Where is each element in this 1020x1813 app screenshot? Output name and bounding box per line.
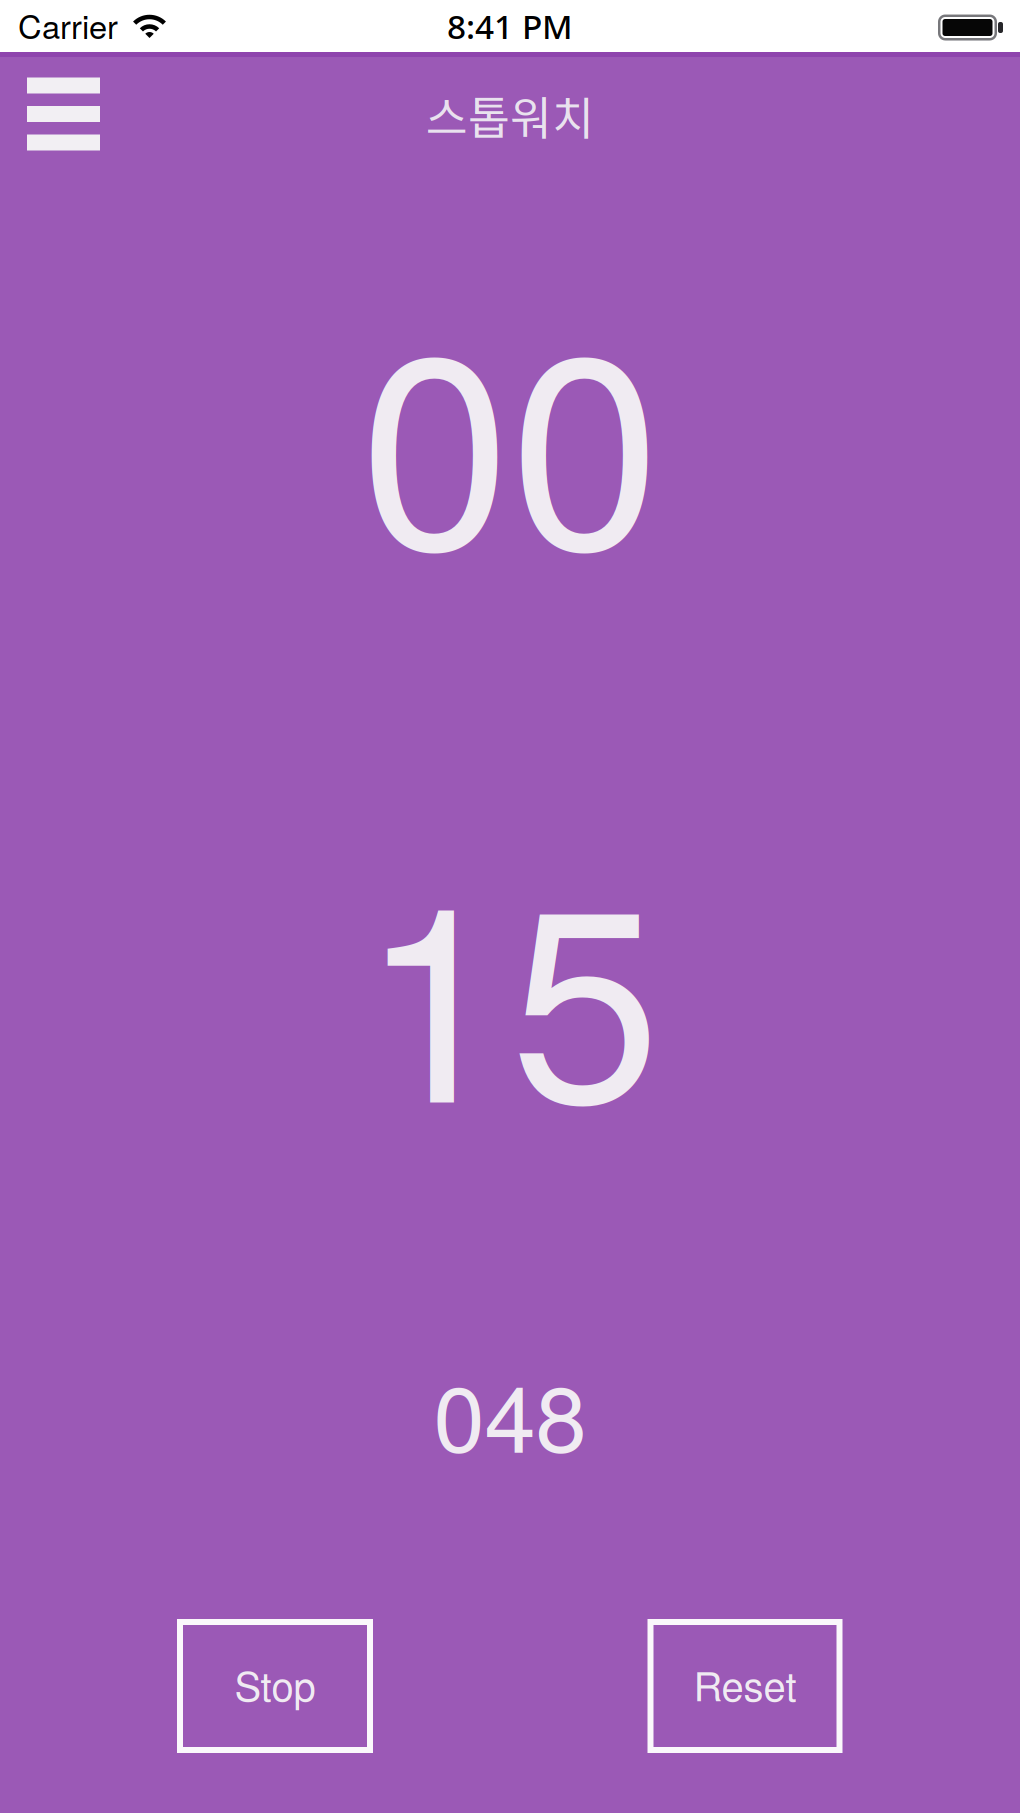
button[interactable]: Stop (177, 1619, 373, 1753)
button[interactable]: Menu (27, 77, 100, 150)
staticText: 8:41 PM (447, 4, 573, 48)
staticText: Carrier (18, 2, 118, 48)
staticText: 00 (360, 239, 660, 626)
staticText: Stop (234, 1655, 315, 1713)
button[interactable]: Reset (647, 1619, 842, 1753)
staticText: 15 (360, 792, 660, 1179)
staticText: 048 (433, 1347, 586, 1479)
staticText: Reset (693, 1655, 796, 1713)
staticText: 스톱워치 (426, 82, 594, 148)
